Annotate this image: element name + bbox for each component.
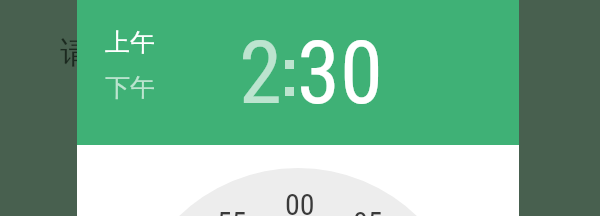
button[interactable] — [77, 145, 519, 216]
button[interactable]: 30 — [297, 22, 383, 124]
staticText: 上午 — [105, 27, 155, 58]
button[interactable]: 上午 — [90, 25, 170, 59]
staticText: 请 — [60, 33, 91, 72]
staticText: 下午 — [105, 72, 155, 103]
button[interactable]: 2 — [239, 22, 282, 124]
button[interactable]: 下午 — [90, 70, 170, 104]
staticText: 00 — [285, 187, 315, 216]
staticText: 55 — [217, 205, 247, 216]
staticText: 05 — [353, 205, 383, 216]
